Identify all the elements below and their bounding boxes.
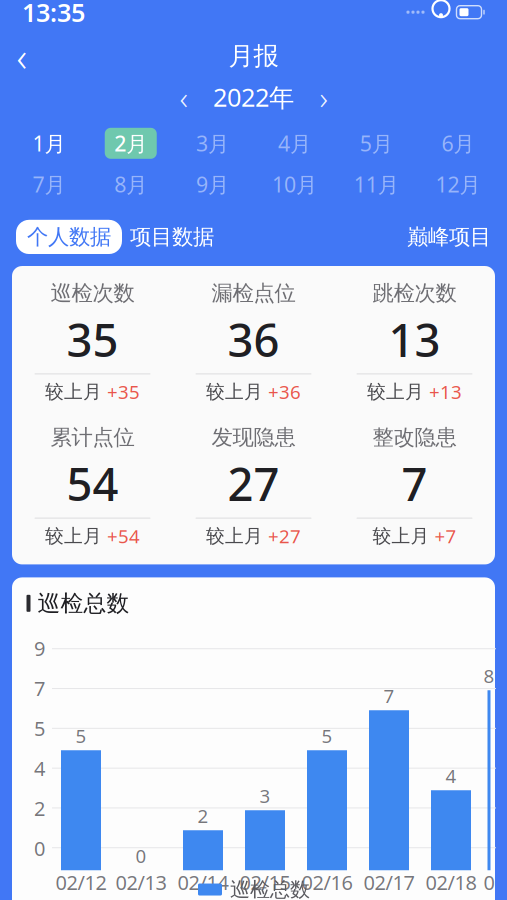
staticText: 02/13: [115, 869, 166, 896]
staticText: 6月: [442, 129, 475, 157]
staticText: +36: [268, 379, 301, 404]
staticText: 5月: [360, 129, 393, 157]
staticText: 个人数据: [27, 224, 111, 250]
staticText: 27: [227, 453, 279, 514]
button[interactable]: Previous year: [163, 81, 203, 113]
button[interactable]: 8月: [105, 169, 157, 200]
staticText: 4月: [278, 129, 311, 157]
staticText: +54: [107, 524, 140, 548]
button[interactable]: 10月: [268, 169, 320, 200]
staticText: 7月: [32, 170, 65, 198]
staticText: 跳检次数: [372, 280, 456, 306]
staticText: 02/12: [55, 869, 106, 896]
staticText: 发现隐患: [211, 424, 295, 450]
staticText: 漏检点位: [211, 280, 295, 306]
staticText: 7: [401, 453, 427, 514]
staticText: 5: [34, 715, 45, 742]
staticText: 较上月: [45, 380, 102, 403]
staticText: 0: [135, 843, 146, 868]
button[interactable]: Next year: [303, 81, 343, 113]
staticText: 较上月: [206, 380, 263, 403]
button[interactable]: 3月: [187, 128, 239, 159]
button[interactable]: 1月: [23, 128, 75, 159]
staticText: ‹: [179, 76, 187, 118]
staticText: 8: [483, 663, 494, 688]
button[interactable]: 巅峰项目: [407, 220, 491, 254]
staticText: 1月: [32, 129, 65, 157]
staticText: 12月: [436, 170, 481, 198]
staticText: 02/14: [177, 869, 228, 896]
staticText: 较上月: [206, 525, 263, 547]
button[interactable]: 4月: [268, 128, 320, 159]
staticText: 13: [388, 309, 440, 369]
staticText: 巡检总数: [230, 877, 310, 900]
staticText: 较上月: [367, 380, 424, 403]
staticText: 较上月: [372, 525, 429, 547]
staticText: 月报: [228, 41, 278, 72]
staticText: 9: [34, 635, 45, 662]
button[interactable]: 7月: [23, 169, 75, 200]
staticText: 巡检次数: [50, 280, 134, 306]
staticText: 5: [75, 723, 86, 748]
staticText: 4: [34, 755, 45, 782]
staticText: 2022年: [213, 80, 294, 114]
staticText: 36: [227, 309, 279, 369]
button[interactable]: 个人数据: [16, 220, 122, 254]
staticText: 累计点位: [50, 424, 134, 450]
staticText: 项目数据: [130, 224, 214, 250]
staticText: +7: [434, 524, 456, 548]
button[interactable]: 5月: [350, 128, 402, 159]
staticText: 5: [321, 723, 332, 748]
staticText: 02/15: [239, 869, 290, 896]
staticText: 4: [445, 763, 456, 788]
staticText: 13:35: [22, 0, 85, 29]
staticText: 7: [383, 683, 394, 708]
staticText: 2: [197, 803, 208, 828]
button[interactable]: 12月: [432, 169, 484, 200]
staticText: 02/16: [301, 869, 352, 896]
staticText: +35: [107, 379, 140, 404]
staticText: 35: [66, 309, 118, 369]
staticText: +13: [429, 379, 462, 404]
button[interactable]: 项目数据: [122, 220, 222, 254]
staticText: 2: [34, 795, 45, 822]
staticText: 11月: [354, 170, 399, 198]
staticText: 3月: [196, 129, 229, 157]
button[interactable]: 2月: [105, 128, 157, 159]
button[interactable]: 9月: [187, 169, 239, 200]
staticText: 9月: [196, 170, 229, 198]
button[interactable]: 11月: [350, 169, 402, 200]
button[interactable]: Back: [0, 36, 44, 76]
staticText: 7: [34, 675, 45, 702]
staticText: 巅峰项目: [407, 224, 491, 250]
staticText: 02/18: [425, 869, 476, 896]
staticText: 54: [66, 453, 118, 514]
staticText: 3: [259, 783, 270, 808]
button[interactable]: 6月: [432, 128, 484, 159]
staticText: 0: [34, 835, 45, 862]
staticText: 10月: [272, 170, 317, 198]
staticText: 较上月: [45, 525, 102, 547]
staticText: 02/17: [363, 869, 414, 896]
staticText: ‹: [16, 30, 27, 83]
staticText: 巡检总数: [37, 589, 129, 617]
staticText: 8月: [114, 170, 147, 198]
staticText: +27: [268, 524, 301, 548]
staticText: 整改隐患: [372, 424, 456, 450]
staticText: 0: [483, 869, 494, 896]
staticText: ›: [319, 76, 327, 118]
staticText: 2月: [114, 129, 147, 157]
